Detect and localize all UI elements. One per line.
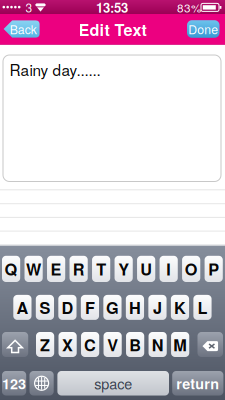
staticText: C [84, 333, 96, 356]
button[interactable]: Y [115, 256, 133, 282]
staticText: O [185, 257, 198, 281]
button[interactable]: L [193, 295, 212, 320]
staticText: Edit Text [78, 18, 146, 41]
staticText: X [62, 333, 73, 356]
button[interactable]: O [182, 256, 200, 282]
staticText: 83% [177, 0, 201, 16]
staticText: A [16, 296, 28, 319]
button[interactable] [172, 371, 223, 395]
button[interactable]: Delete [197, 332, 223, 357]
button[interactable]: B [126, 332, 144, 357]
staticText: V [107, 333, 118, 356]
staticText: 13:53 [96, 0, 128, 17]
button[interactable]: Done [187, 20, 219, 38]
staticText: space [94, 373, 132, 393]
button[interactable]: I [160, 256, 178, 282]
staticText: P [208, 257, 219, 281]
staticText: G [106, 296, 119, 319]
staticText: Rainy day...... [9, 58, 100, 80]
staticText: S [39, 296, 50, 319]
button[interactable]: D [58, 295, 76, 320]
staticText: M [173, 333, 187, 356]
button[interactable]: X [58, 332, 77, 357]
staticText: Done [188, 20, 218, 38]
button[interactable]: U [137, 256, 155, 282]
button[interactable]: Q [2, 256, 20, 282]
button[interactable]: Back [4, 20, 40, 38]
button[interactable]: C [81, 332, 99, 357]
button[interactable]: Shift [2, 332, 28, 357]
staticText: I [166, 257, 171, 281]
staticText: D [61, 296, 73, 319]
button[interactable]: Switch keyboard [29, 371, 54, 395]
button[interactable]: H [126, 295, 144, 320]
staticText: 123 [2, 373, 26, 393]
staticText: T [96, 257, 106, 281]
button[interactable]: M [171, 332, 189, 357]
button[interactable]: K [171, 295, 189, 320]
button[interactable]: F [81, 295, 99, 320]
staticText: R [73, 257, 85, 281]
staticText: J [153, 296, 162, 319]
button[interactable]: J [148, 295, 167, 320]
staticText: Q [5, 257, 18, 281]
staticText: Z [40, 333, 50, 356]
staticText: N [152, 333, 164, 356]
button[interactable]: R [69, 256, 88, 282]
staticText: L [197, 296, 207, 319]
staticText: U [140, 257, 152, 281]
button[interactable]: W [24, 256, 43, 282]
button[interactable]: V [103, 332, 122, 357]
staticText: Y [118, 257, 129, 281]
button[interactable]: S [36, 295, 54, 320]
button[interactable]: N [149, 332, 167, 357]
staticText: Back [10, 20, 37, 38]
staticText: E [51, 257, 62, 281]
button[interactable]: G [103, 295, 121, 320]
staticText: H [129, 296, 141, 319]
button[interactable]: E [47, 256, 65, 282]
staticText: return [176, 373, 219, 393]
staticText: 3 [25, 0, 32, 16]
button[interactable]: P [205, 256, 223, 282]
button[interactable]: A [13, 295, 31, 320]
button[interactable]: space [57, 371, 169, 395]
button[interactable]: Z [36, 332, 54, 357]
button[interactable]: Numbers [2, 371, 26, 395]
staticText: F [85, 296, 95, 319]
staticText: W [26, 257, 41, 281]
button[interactable]: T [92, 256, 110, 282]
staticText: B [129, 333, 141, 356]
staticText: K [174, 296, 186, 319]
